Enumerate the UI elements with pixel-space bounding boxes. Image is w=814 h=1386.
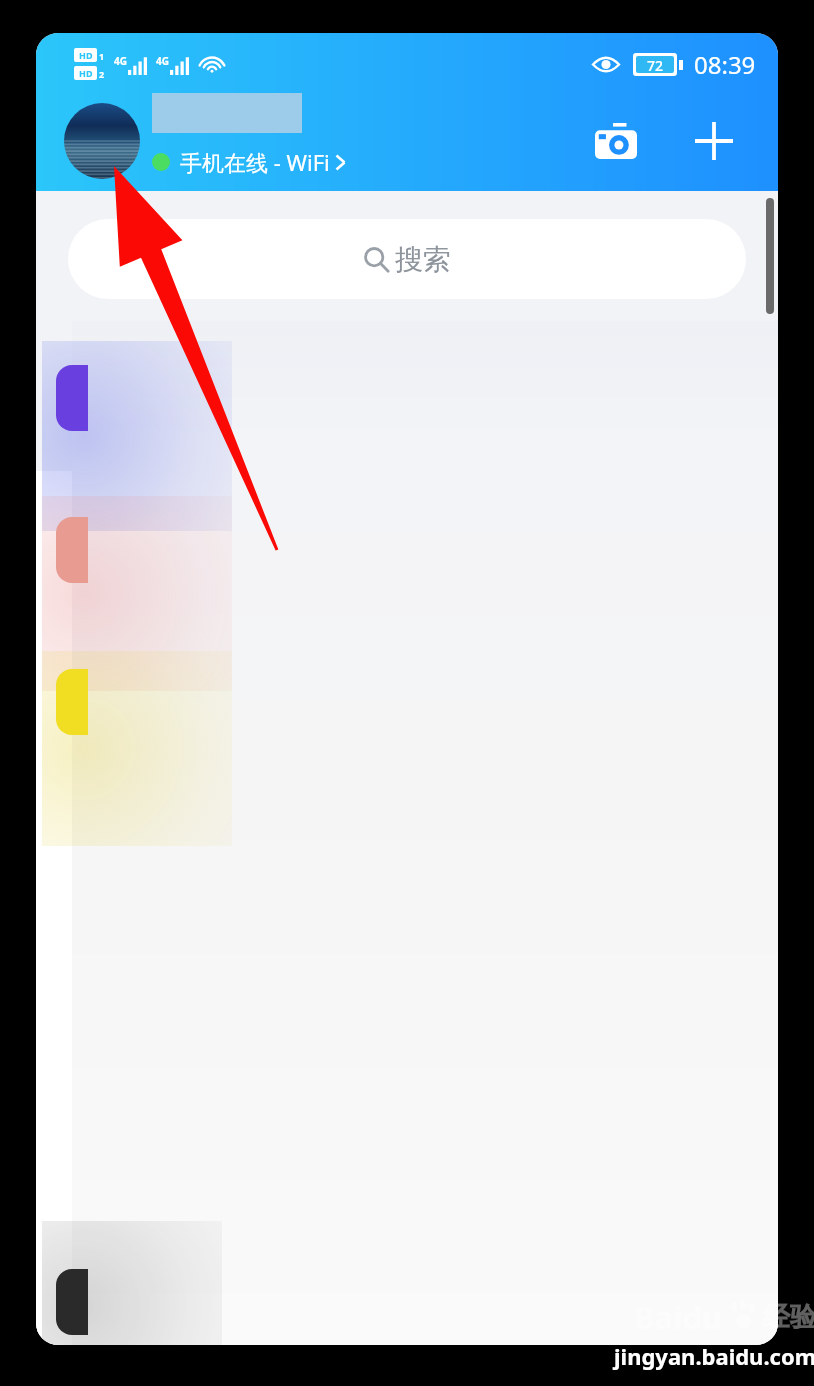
- button[interactable]: [56, 669, 88, 735]
- button[interactable]: 手机在线 - WiFi: [64, 103, 346, 179]
- staticText: jingyan.baidu.com: [614, 1341, 814, 1371]
- staticText: 手机在线 - WiFi: [180, 147, 330, 177]
- button[interactable]: Add: [682, 109, 746, 173]
- button[interactable]: [56, 365, 88, 431]
- staticText: 搜索: [395, 242, 451, 277]
- staticText: 经验: [763, 1300, 814, 1334]
- staticText: 4G: [156, 54, 169, 68]
- button[interactable]: [56, 1269, 88, 1335]
- button[interactable]: [56, 517, 88, 583]
- staticText: 08:39: [694, 48, 756, 81]
- staticText: 2: [99, 68, 105, 80]
- staticText: 72: [647, 56, 664, 73]
- staticText: 4G: [114, 54, 127, 68]
- button[interactable]: 搜索: [68, 219, 746, 299]
- staticText: HD: [79, 49, 93, 61]
- staticText: HD: [79, 67, 93, 79]
- button[interactable]: Camera: [584, 109, 648, 173]
- staticText: 1: [99, 50, 105, 62]
